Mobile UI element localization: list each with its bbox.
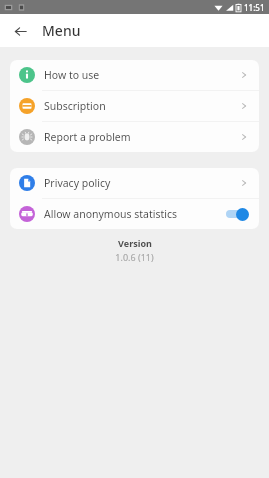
button[interactable]: How to use xyxy=(10,60,259,90)
button[interactable]: Back xyxy=(6,17,34,45)
staticText: Allow anonymous statistics xyxy=(44,207,178,221)
staticText: How to use xyxy=(44,68,100,82)
button[interactable]: Subscription xyxy=(10,91,259,121)
staticText: 1.0.6 (11) xyxy=(115,251,154,263)
staticText: Privacy policy xyxy=(44,176,111,190)
staticText: Version xyxy=(118,237,152,249)
button[interactable]: Allow anonymous statistics xyxy=(10,199,259,229)
staticText: Report a problem xyxy=(44,130,131,144)
button[interactable]: Report a problem xyxy=(10,122,259,152)
staticText: Subscription xyxy=(44,99,106,113)
button[interactable]: Privacy policy xyxy=(10,168,259,198)
staticText: Menu xyxy=(42,21,81,40)
staticText: 11:51 xyxy=(244,2,265,13)
